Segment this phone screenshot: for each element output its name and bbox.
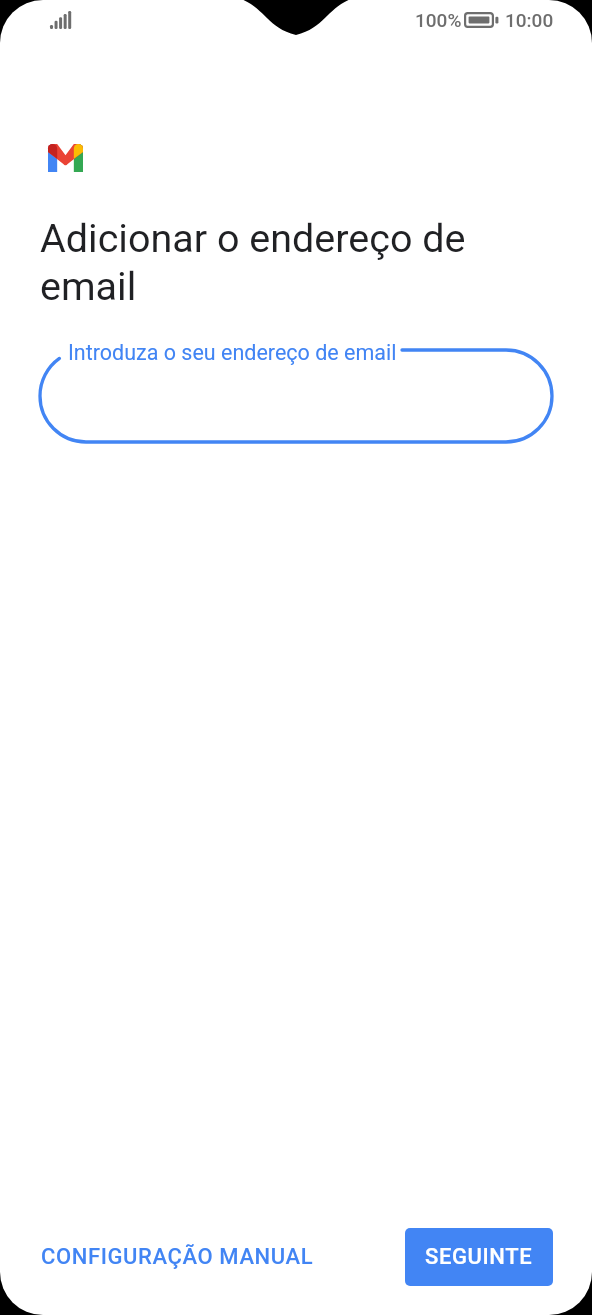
button[interactable]: Introduza o seu endereço de email: [30, 332, 562, 462]
staticText: Adicionar o endereço de email: [40, 215, 510, 310]
staticText: CONFIGURAÇÃO MANUAL: [41, 1244, 314, 1270]
other: Battery full: [464, 12, 500, 29]
staticText: SEGUINTE: [425, 1244, 533, 1270]
staticText: 10:00: [505, 9, 554, 31]
staticText: Introduza o seu endereço de email: [68, 340, 397, 365]
other: Mobile signal strength: [50, 11, 71, 29]
button[interactable]: CONFIGURAÇÃO MANUAL: [29, 1230, 326, 1284]
other: Gmail: [48, 144, 83, 172]
staticText: 100%: [415, 9, 462, 31]
button[interactable]: SEGUINTE: [405, 1228, 553, 1286]
